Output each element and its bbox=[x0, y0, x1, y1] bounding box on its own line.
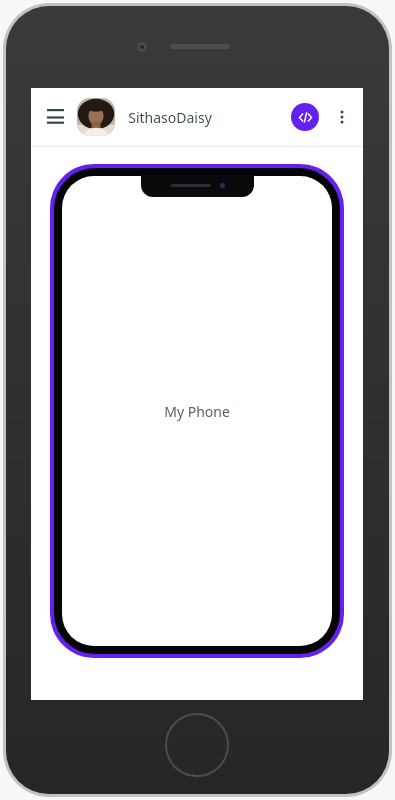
staticText: My Phone bbox=[164, 402, 230, 421]
button[interactable]: More options bbox=[327, 102, 357, 132]
button[interactable]: View source code bbox=[291, 103, 319, 131]
button[interactable]: Profile picture bbox=[77, 98, 115, 136]
button[interactable]: Open navigation menu bbox=[39, 101, 71, 133]
staticText: SithasoDaisy bbox=[128, 108, 212, 127]
